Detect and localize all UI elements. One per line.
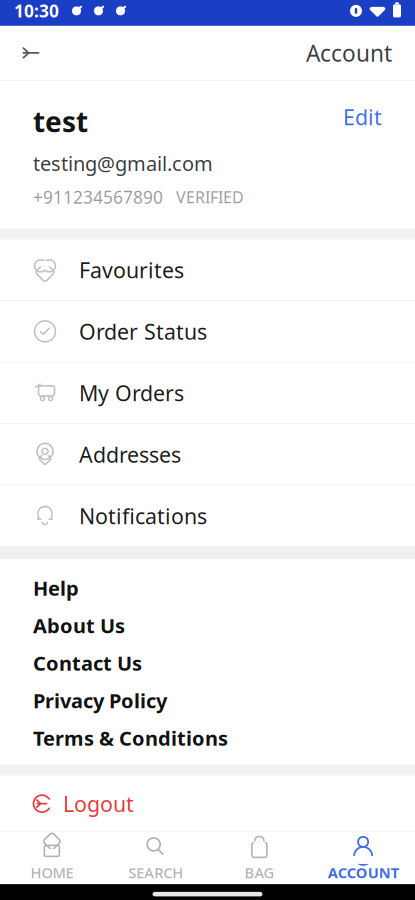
staticText: Contact Us bbox=[33, 650, 142, 676]
button[interactable]: Notifications bbox=[0, 486, 415, 546]
button[interactable]: SEARCH bbox=[104, 832, 208, 884]
button[interactable]: Contact Us bbox=[0, 644, 415, 682]
button[interactable]: Edit bbox=[343, 103, 382, 131]
staticText: Notifications bbox=[79, 502, 207, 530]
button[interactable]: Favourites bbox=[0, 240, 415, 300]
button[interactable]: Logout bbox=[0, 776, 415, 832]
staticText: SEARCH bbox=[128, 863, 183, 882]
button[interactable]: HOME bbox=[0, 832, 104, 884]
staticText: Account bbox=[306, 38, 392, 68]
staticText: test bbox=[33, 103, 88, 140]
button[interactable]: Order Status bbox=[0, 301, 415, 362]
button[interactable]: Privacy Policy bbox=[0, 682, 415, 719]
staticText: Logout bbox=[63, 789, 134, 818]
staticText: ACCOUNT bbox=[328, 863, 399, 882]
staticText: 10:30 bbox=[14, 0, 59, 22]
button[interactable]: About Us bbox=[0, 607, 415, 644]
staticText: Privacy Policy bbox=[33, 687, 167, 714]
staticText: Favourites bbox=[79, 256, 184, 284]
button[interactable]: ACCOUNT bbox=[311, 832, 415, 884]
staticText: testing@gmail.com bbox=[33, 150, 213, 177]
staticText: Addresses bbox=[79, 440, 181, 468]
button[interactable]: BAG bbox=[207, 832, 311, 884]
staticText: HOME bbox=[30, 863, 73, 882]
staticText: Terms & Conditions bbox=[33, 725, 228, 751]
staticText: Edit bbox=[343, 103, 382, 131]
staticText: Order Status bbox=[79, 317, 207, 345]
staticText: About Us bbox=[33, 612, 125, 639]
staticText: Help bbox=[33, 575, 79, 601]
staticText: My Orders bbox=[79, 379, 184, 407]
staticText: VERIFIED bbox=[176, 186, 244, 208]
button[interactable]: Back bbox=[8, 30, 54, 76]
button[interactable]: Terms & Conditions bbox=[0, 719, 415, 757]
button[interactable]: Help bbox=[0, 569, 415, 607]
staticText: +911234567890 bbox=[33, 186, 163, 209]
staticText: BAG bbox=[244, 863, 274, 882]
button[interactable]: Addresses bbox=[0, 424, 415, 485]
button[interactable]: My Orders bbox=[0, 363, 415, 423]
